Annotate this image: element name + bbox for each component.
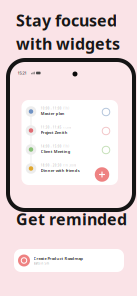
button[interactable]: Add task [94,167,109,182]
staticText: Client Meeting [41,149,71,154]
staticText: 14:00 - 15:00 [41,145,62,148]
button[interactable]: 14:00 - 15:00 [22,140,118,159]
button[interactable]: Mark Client Meeting done [102,146,110,154]
button[interactable]: Create Product Roadmap [14,249,124,272]
button[interactable]: Mark Project Zenith done [102,127,110,135]
staticText: (1h) [63,107,69,110]
staticText: Project Zenith [41,130,68,135]
staticText: (1h 30m) [63,164,76,167]
staticText: Starts in 5m [33,262,48,265]
staticText: 15:21 [17,70,26,76]
button[interactable]: 11:30 - 11:45 [22,121,118,140]
button[interactable]: 18:00 - 20:30 [22,159,118,178]
staticText: (1h) [63,145,69,148]
staticText: Stay focused [16,10,117,31]
staticText: 11:30 - 11:45 [41,126,62,129]
staticText: Create Product Roadmap [33,256,83,261]
button[interactable]: 10:00 - 11:00 [22,102,118,121]
button[interactable]: Mark Master plan done [102,108,110,116]
staticText: Dinner with friends [41,168,80,173]
staticText: (15m) [63,126,71,129]
staticText: with widgets [16,33,120,54]
staticText: 18:00 - 20:30 [41,164,62,167]
staticText: Get reminded [16,208,127,230]
staticText: Master plan [41,111,65,116]
staticText: 10:00 - 11:00 [41,107,62,110]
